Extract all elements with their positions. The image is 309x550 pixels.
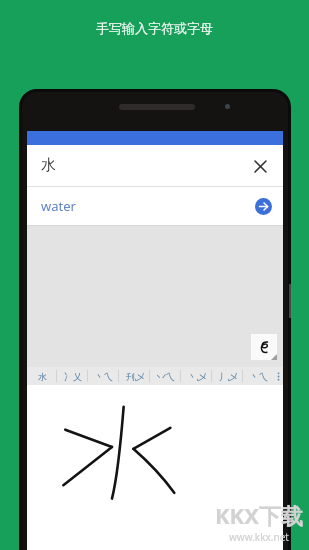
staticText: 冫乂 [64,371,82,382]
button[interactable]: Handwriting canvas [27,385,283,550]
staticText: 丿乄 [219,371,237,382]
button[interactable]: water [27,187,283,225]
staticText: 丷乀 [157,371,175,382]
staticText: water [41,197,76,215]
button[interactable]: 丶乀 [243,367,274,385]
button[interactable]: 丿乄 [212,367,243,385]
staticText: 丶乄 [188,371,206,382]
button[interactable]: 水 [27,145,283,186]
button[interactable]: 丶乄 [181,367,212,385]
button[interactable]: Handwriting input [251,334,277,360]
button[interactable]: 冫乂 [57,367,88,385]
staticText: 刋乄 [126,371,144,382]
staticText: 手写输入字符或字母 [96,20,213,36]
staticText: 丶乀 [250,371,268,382]
button[interactable]: 水 [27,367,57,385]
button[interactable]: 刋乄 [119,367,150,385]
button[interactable]: Clear [249,155,271,177]
button[interactable]: 丷乀 [150,367,181,385]
staticText: www.kkx.net [229,530,289,544]
staticText: 丶乀 [95,371,113,382]
staticText: 水 [38,371,47,382]
button[interactable]: 丶乀 [88,367,119,385]
button[interactable]: More candidates [274,367,283,385]
staticText: 水 [41,156,56,175]
staticText: KKX下载 [215,500,303,530]
button[interactable]: Go [255,198,272,215]
